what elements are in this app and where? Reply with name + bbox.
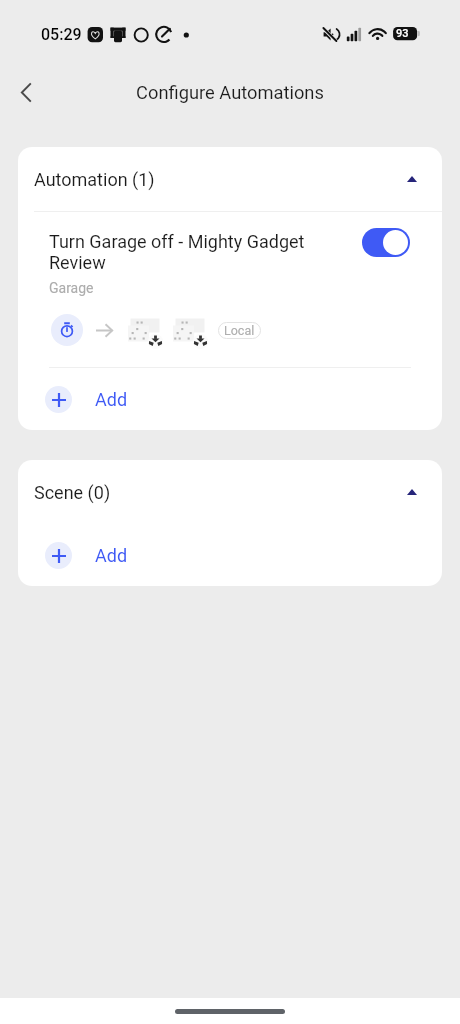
- staticText: 93: [396, 27, 409, 40]
- button[interactable]: Scene (0): [18, 460, 442, 524]
- staticText: Add: [95, 389, 128, 410]
- button[interactable]: Add: [18, 524, 442, 586]
- button[interactable]: Back: [6, 72, 46, 112]
- button[interactable]: Toggle automation: [362, 228, 410, 257]
- staticText: Add: [95, 545, 128, 566]
- button[interactable]: Add: [18, 368, 442, 430]
- staticText: Automation (1): [34, 169, 155, 190]
- staticText: Configure Automations: [136, 82, 324, 103]
- staticText: Scene (0): [34, 482, 111, 503]
- staticText: Turn Garage off - Mighty Gadget Review: [49, 231, 346, 273]
- staticText: 05:29: [41, 25, 82, 44]
- staticText: Garage: [49, 280, 94, 296]
- button[interactable]: Turn Garage off - Mighty Gadget Review: [18, 212, 442, 367]
- staticText: Local: [224, 323, 255, 338]
- button[interactable]: Automation (1): [18, 147, 442, 211]
